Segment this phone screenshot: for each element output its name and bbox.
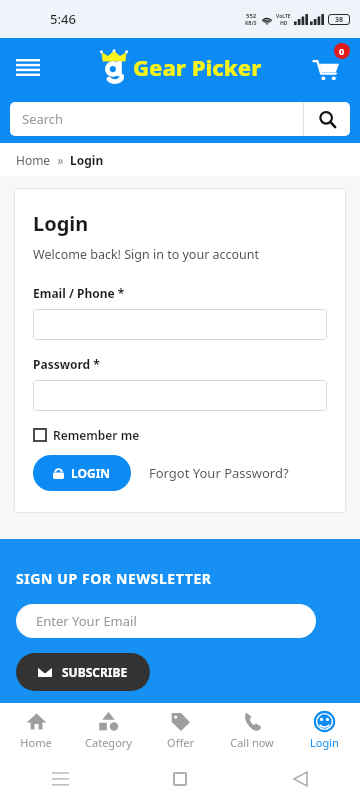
staticText: 552 xyxy=(246,12,257,20)
button[interactable]: LOGIN xyxy=(33,455,131,491)
staticText: 0 xyxy=(339,45,345,57)
staticText: Password * xyxy=(33,356,100,372)
button[interactable]: Home xyxy=(120,758,240,800)
button[interactable]: Call now xyxy=(216,703,288,758)
staticText: LOGIN xyxy=(71,465,111,481)
button[interactable]: Remember me xyxy=(33,427,140,443)
staticText: Remember me xyxy=(53,427,140,443)
staticText: Call now xyxy=(230,735,274,750)
button[interactable]: Search xyxy=(304,102,350,136)
staticText: Login xyxy=(33,210,89,237)
staticText: Welcome back! Sign in to your account xyxy=(33,246,260,263)
staticText: Category xyxy=(85,735,132,750)
button[interactable]: Category xyxy=(72,703,144,758)
button[interactable]: Back xyxy=(240,758,360,800)
button[interactable]: Login xyxy=(288,703,360,758)
staticText: Login xyxy=(310,735,339,750)
button[interactable]: Forgot Your Password? xyxy=(149,464,289,482)
staticText: SUBSCRIBE xyxy=(62,664,128,680)
staticText: Enter Your Email xyxy=(36,612,137,630)
staticText: KB/S xyxy=(245,20,257,27)
button[interactable] xyxy=(33,380,327,411)
staticText: VoLTE xyxy=(276,13,291,20)
button[interactable]: Search xyxy=(10,102,350,136)
staticText: Offer xyxy=(167,735,194,750)
staticText: 38 xyxy=(335,15,344,25)
button[interactable]: Home xyxy=(16,152,51,168)
staticText: HD xyxy=(280,20,288,27)
staticText: Gear Picker xyxy=(133,52,262,82)
button[interactable]: Home xyxy=(0,703,72,758)
staticText: Login xyxy=(70,152,104,168)
staticText: Home xyxy=(20,735,52,750)
button[interactable]: Enter Your Email xyxy=(16,604,316,638)
staticText: 5:46 xyxy=(50,10,76,28)
staticText: » xyxy=(51,152,70,168)
button[interactable] xyxy=(33,309,327,340)
button[interactable]: Offer xyxy=(144,703,216,758)
button[interactable]: SUBSCRIBE xyxy=(16,653,150,691)
button[interactable]: Cart, 0 items xyxy=(304,45,348,89)
button[interactable]: Open menu xyxy=(8,47,48,87)
button[interactable]: Recent apps xyxy=(0,758,120,800)
staticText: Email / Phone * xyxy=(33,285,125,301)
staticText: Search xyxy=(22,110,303,128)
staticText: SIGN UP FOR NEWSLETTER xyxy=(16,569,212,588)
